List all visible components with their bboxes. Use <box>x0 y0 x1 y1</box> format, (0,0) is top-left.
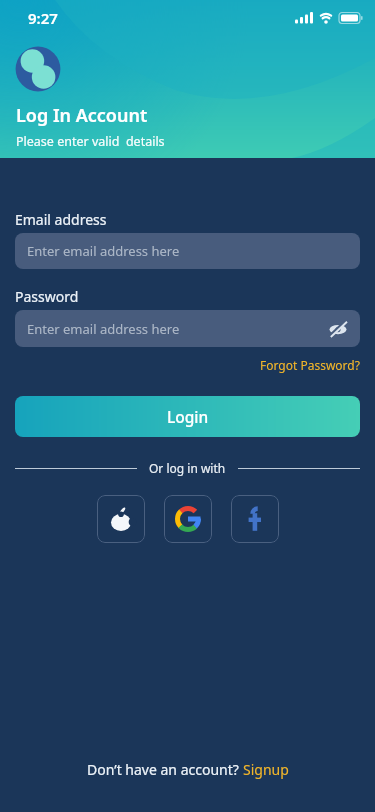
button[interactable]: Enter email address here <box>15 233 360 269</box>
staticText: Login <box>167 406 209 427</box>
button[interactable] <box>97 495 145 543</box>
button[interactable]: Signup <box>243 760 289 779</box>
staticText: Please enter valid details <box>16 133 165 150</box>
staticText: Log In Account <box>16 103 148 128</box>
button[interactable]: Enter email address here <box>15 310 360 347</box>
button[interactable] <box>164 495 212 543</box>
button[interactable] <box>231 495 279 543</box>
staticText: Enter email address here <box>27 320 180 338</box>
staticText: Don’t have an account? <box>87 760 243 779</box>
staticText: Password <box>15 287 79 306</box>
button[interactable]: Forgot Password? <box>260 357 360 373</box>
staticText: 9:27 <box>28 8 58 28</box>
staticText: Email address <box>15 210 107 229</box>
button[interactable]: Login <box>15 396 360 437</box>
staticText: Enter email address here <box>27 242 180 260</box>
staticText: Or log in with <box>149 460 226 476</box>
